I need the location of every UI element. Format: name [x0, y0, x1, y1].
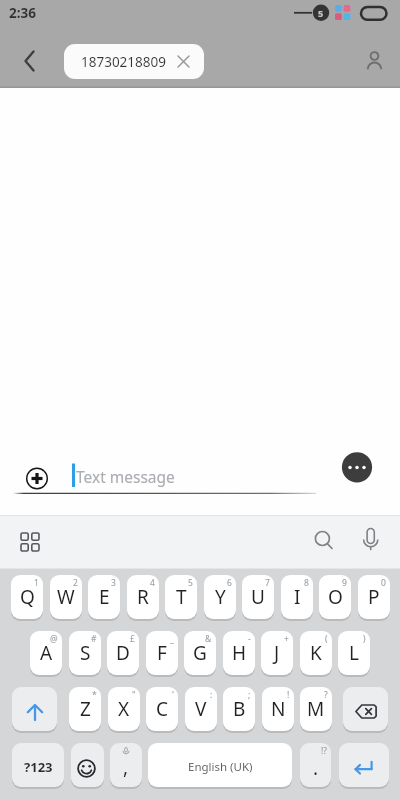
button[interactable]: ,: [110, 743, 142, 787]
staticText: ": [132, 689, 136, 701]
staticText: A: [40, 640, 53, 666]
staticText: £: [130, 633, 135, 645]
staticText: _: [170, 633, 174, 645]
staticText: 2:36: [9, 4, 36, 22]
button[interactable]: S: [69, 631, 101, 675]
staticText: -: [248, 633, 251, 645]
staticText: 9: [342, 577, 347, 589]
staticText: F: [157, 640, 167, 666]
button[interactable]: F: [146, 631, 178, 675]
staticText: 4: [150, 577, 155, 589]
button[interactable]: [14, 527, 46, 557]
button[interactable]: E: [88, 575, 120, 619]
button[interactable]: [339, 743, 389, 787]
staticText: H: [232, 640, 247, 666]
button[interactable]: P: [358, 575, 390, 619]
staticText: K: [310, 640, 322, 666]
staticText: T: [176, 584, 187, 610]
button[interactable]: [342, 452, 373, 483]
staticText: &: [205, 633, 212, 645]
button[interactable]: G: [184, 631, 216, 675]
staticText: Q: [20, 584, 35, 610]
button[interactable]: [22, 463, 52, 493]
staticText: !: [287, 689, 290, 701]
button[interactable]: .: [300, 743, 331, 787]
staticText: ): [363, 633, 366, 645]
staticText: 2: [73, 577, 78, 589]
button[interactable]: X: [108, 687, 140, 731]
button[interactable]: [357, 42, 393, 78]
staticText: Y: [215, 584, 226, 610]
button[interactable]: [71, 743, 104, 787]
staticText: +: [284, 633, 289, 645]
button[interactable]: D: [107, 631, 139, 675]
staticText: 5: [318, 7, 324, 19]
button[interactable]: [12, 687, 57, 731]
staticText: D: [116, 640, 130, 666]
button[interactable]: Q: [11, 575, 43, 619]
staticText: U: [251, 584, 265, 610]
staticText: Text message: [76, 466, 175, 487]
staticText: X: [118, 696, 130, 722]
staticText: I: [294, 584, 301, 610]
button[interactable]: English (UK): [148, 743, 292, 787]
staticText: :: [210, 689, 213, 701]
staticText: G: [193, 640, 207, 666]
button[interactable]: N: [262, 687, 294, 731]
staticText: 3: [111, 577, 116, 589]
button[interactable]: C: [146, 687, 178, 731]
button[interactable]: H: [223, 631, 255, 675]
staticText: .: [313, 755, 319, 781]
staticText: N: [271, 696, 286, 722]
staticText: L: [349, 640, 359, 666]
button[interactable]: [355, 526, 387, 556]
button[interactable]: M: [300, 687, 332, 731]
button[interactable]: B: [223, 687, 255, 731]
button[interactable]: U: [242, 575, 274, 619]
button[interactable]: A: [30, 631, 62, 675]
staticText: B: [233, 696, 246, 722]
button[interactable]: T: [165, 575, 197, 619]
staticText: W: [57, 584, 75, 610]
button[interactable]: Y: [204, 575, 236, 619]
button[interactable]: [14, 45, 46, 77]
staticText: ?123: [24, 758, 53, 776]
button[interactable]: 18730218809: [64, 44, 204, 79]
staticText: (: [325, 633, 328, 645]
staticText: 5: [188, 577, 193, 589]
button[interactable]: K: [300, 631, 332, 675]
staticText: ;: [248, 689, 251, 701]
staticText: R: [137, 584, 149, 610]
button[interactable]: O: [319, 575, 351, 619]
staticText: *: [92, 689, 97, 701]
staticText: E: [99, 584, 110, 610]
button[interactable]: R: [127, 575, 159, 619]
button[interactable]: L: [338, 631, 370, 675]
button[interactable]: [306, 526, 338, 556]
staticText: !?: [321, 745, 327, 757]
button[interactable]: ?123: [12, 743, 64, 787]
button[interactable]: Z: [69, 687, 101, 731]
staticText: @: [50, 633, 58, 645]
staticText: M: [307, 696, 325, 722]
button[interactable]: I: [281, 575, 313, 619]
staticText: V: [195, 696, 207, 722]
button[interactable]: V: [185, 687, 217, 731]
staticText: Z: [80, 696, 91, 722]
staticText: 1: [34, 577, 39, 589]
staticText: 0: [381, 577, 386, 589]
staticText: ,: [123, 754, 129, 780]
staticText: S: [80, 640, 91, 666]
staticText: C: [156, 696, 169, 722]
staticText: English (UK): [188, 759, 253, 775]
button[interactable]: J: [261, 631, 293, 675]
staticText: ': [172, 689, 174, 701]
staticText: #: [91, 633, 97, 645]
button[interactable]: W: [50, 575, 82, 619]
staticText: O: [328, 584, 343, 610]
staticText: 8: [304, 577, 309, 589]
button[interactable]: [343, 687, 388, 731]
staticText: J: [274, 640, 280, 666]
staticText: 18730218809: [81, 53, 166, 71]
button[interactable]: Text message: [68, 458, 316, 495]
